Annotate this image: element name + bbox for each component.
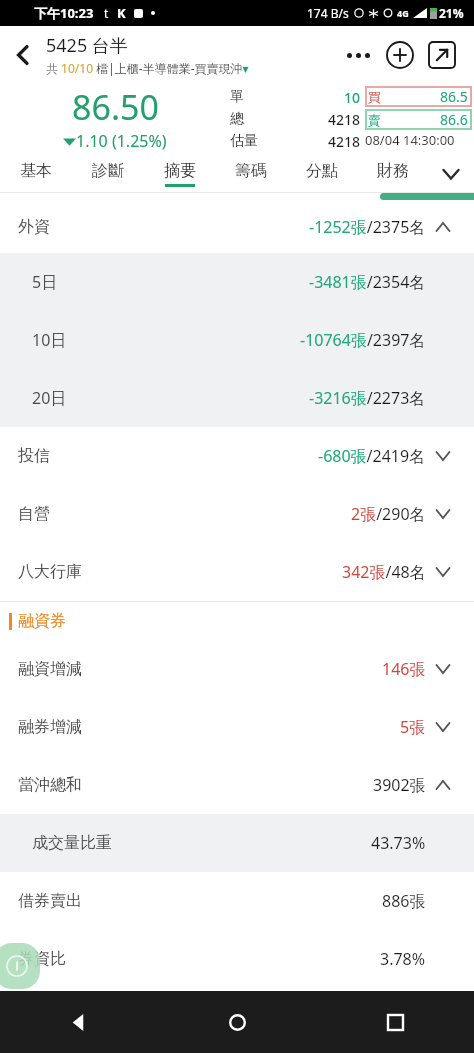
button[interactable]: 自營 (0, 485, 474, 543)
button[interactable]: Open chart (422, 35, 462, 75)
staticText: 自營 (18, 504, 50, 524)
staticText: 買 (368, 89, 381, 105)
button[interactable]: 10日 (0, 311, 474, 369)
staticText: 4G (397, 7, 409, 19)
staticText: 投信 (18, 446, 50, 466)
button[interactable]: 借券賣出 (0, 872, 474, 930)
staticText: 4218 (328, 132, 361, 151)
staticText: 5425 台半 (46, 33, 128, 58)
staticText: -10764張/2397名 (300, 329, 426, 351)
button[interactable]: 5日 (0, 253, 474, 311)
staticText: 5日 (32, 271, 58, 293)
staticText: 86.5 (440, 87, 468, 106)
staticText: 八大行庫 (18, 562, 82, 582)
staticText: 當沖總和 (18, 775, 82, 795)
button[interactable]: 財務 (357, 155, 428, 193)
staticText: 10日 (32, 329, 67, 351)
staticText: 20日 (32, 387, 67, 409)
staticText: 146張 (382, 658, 426, 680)
button[interactable]: 分點 (286, 155, 357, 193)
staticText: 342張/48名 (342, 561, 426, 583)
staticText: 券資比 (18, 949, 66, 969)
button[interactable]: 成交量比重 (0, 814, 474, 872)
button[interactable]: Floating assistant (0, 943, 40, 989)
staticText: -1252張/2375名 (309, 216, 426, 238)
staticText: 融資券 (18, 611, 66, 631)
staticText: 4218 (328, 110, 361, 129)
staticText: 5張 (400, 716, 426, 738)
staticText: 估量 (230, 132, 258, 150)
staticText: 886張 (382, 890, 426, 912)
staticText: K (117, 4, 126, 22)
staticText: 10 (344, 88, 361, 107)
button[interactable]: More options (338, 35, 378, 75)
staticText: -3216張/2273名 (309, 387, 426, 409)
button[interactable]: 20日 (0, 369, 474, 427)
staticText: 融資增減 (18, 659, 82, 679)
staticText: 共 10/10 檔|上櫃-半導體業-買賣現沖▾ (46, 60, 249, 76)
staticText: 成交量比重 (32, 833, 112, 853)
staticText: 籌碼 (235, 161, 267, 181)
button[interactable]: 摘要 (144, 155, 215, 193)
button[interactable]: 籌碼 (215, 155, 286, 193)
button[interactable]: Back (0, 991, 158, 1053)
button[interactable]: 診斷 (72, 155, 144, 193)
staticText: 86.50 (72, 84, 159, 130)
button[interactable]: 基本 (0, 155, 72, 193)
staticText: 單 (230, 88, 244, 106)
button[interactable]: Recent apps (316, 991, 474, 1053)
staticText: 分點 (306, 161, 338, 181)
staticText: 43.73% (371, 832, 426, 854)
button[interactable]: 券資比 (0, 930, 474, 988)
staticText: 21% (439, 5, 464, 21)
button[interactable]: 外資 (0, 200, 474, 253)
staticText: 融券增減 (18, 717, 82, 737)
staticText: 3902張 (373, 774, 426, 796)
staticText: 2張/290名 (351, 503, 426, 525)
staticText: 1.10 (1.25%) (76, 130, 167, 152)
button[interactable]: Home (158, 991, 316, 1053)
staticText: 診斷 (92, 161, 124, 181)
staticText: 借券賣出 (18, 891, 82, 911)
button[interactable]: 當沖總和 (0, 756, 474, 814)
staticText: 174 B/s (307, 5, 349, 21)
staticText: 08/04 14:30:00 (365, 131, 455, 149)
button[interactable]: Add to watchlist (378, 33, 422, 77)
button[interactable]: Back (0, 32, 46, 78)
button[interactable]: 買 (365, 86, 472, 107)
button[interactable]: 賣 (365, 109, 472, 130)
button[interactable]: 八大行庫 (0, 543, 474, 601)
staticText: -680張/2419名 (318, 445, 426, 467)
button[interactable]: 融券增減 (0, 698, 474, 756)
staticText: 總 (230, 110, 244, 128)
button[interactable]: 融資增減 (0, 640, 474, 698)
button[interactable]: Show more tabs (428, 155, 474, 193)
staticText: 摘要 (164, 161, 196, 181)
staticText: 外資 (18, 217, 50, 237)
staticText: t (104, 5, 109, 21)
button[interactable]: 投信 (0, 427, 474, 485)
staticText: -3481張/2354名 (309, 271, 426, 293)
staticText: 賣 (368, 112, 381, 128)
staticText: 下午10:23 (34, 4, 94, 22)
staticText: 基本 (20, 161, 52, 181)
staticText: 財務 (377, 161, 409, 181)
staticText: 3.78% (380, 948, 426, 970)
staticText: 86.6 (440, 110, 468, 129)
